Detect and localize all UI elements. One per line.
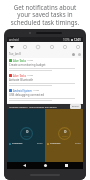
staticText: android — [9, 38, 19, 42]
button[interactable]: Home — [41, 162, 49, 169]
staticText: Scheduled — [12, 142, 23, 145]
staticText: TASKS — [62, 135, 68, 138]
button[interactable]: Settings — [72, 53, 75, 56]
staticText: 12:01 — [74, 38, 81, 42]
staticText: • now — [33, 89, 40, 92]
staticText: USB debugging connected — [9, 93, 44, 97]
button[interactable]: BLOCK — [70, 104, 81, 109]
staticText: • now — [27, 74, 34, 77]
button[interactable]: Expand — [78, 53, 81, 56]
button[interactable]: Bluetooth — [22, 44, 28, 50]
staticText: Android System — [13, 89, 32, 92]
staticText: 0 — [26, 129, 29, 135]
staticText: Get notificatins about your saved tasks … — [5, 3, 85, 27]
button[interactable]: Battery saver — [75, 44, 81, 50]
button[interactable]: Alive Tasks — [7, 58, 83, 73]
staticText: • now — [27, 59, 34, 62]
staticText: Android System • USB charging this devic… — [9, 105, 57, 108]
button[interactable]: Flashlight — [49, 44, 55, 50]
staticText: 00:00 — [75, 142, 81, 145]
staticText: BLOCK — [72, 105, 79, 108]
staticText: Scheduled — [50, 142, 61, 145]
button[interactable]: 0 — [7, 109, 45, 162]
button[interactable]: Do not disturb — [35, 44, 41, 50]
button[interactable]: 0 — [45, 109, 83, 162]
button[interactable]: Back — [20, 162, 28, 169]
staticText: Tue, Jan 8 — [9, 52, 21, 56]
staticText: Create a monitoring budget — [9, 63, 46, 67]
staticText: Alive Tasks — [13, 74, 26, 77]
staticText: Alive Tasks — [13, 59, 26, 62]
button[interactable]: Wifi — [9, 44, 15, 50]
staticText: Activate Bluetooth — [9, 78, 34, 82]
button[interactable]: Android System — [7, 88, 83, 103]
staticText: 0 — [64, 129, 67, 135]
staticText: 100% — [63, 38, 70, 42]
button[interactable]: Alive Tasks — [7, 73, 83, 88]
button[interactable]: Auto rotate — [62, 44, 68, 50]
staticText: 00:00 — [37, 142, 43, 145]
staticText: TASKS — [24, 135, 30, 138]
button[interactable]: Recents — [62, 162, 70, 169]
